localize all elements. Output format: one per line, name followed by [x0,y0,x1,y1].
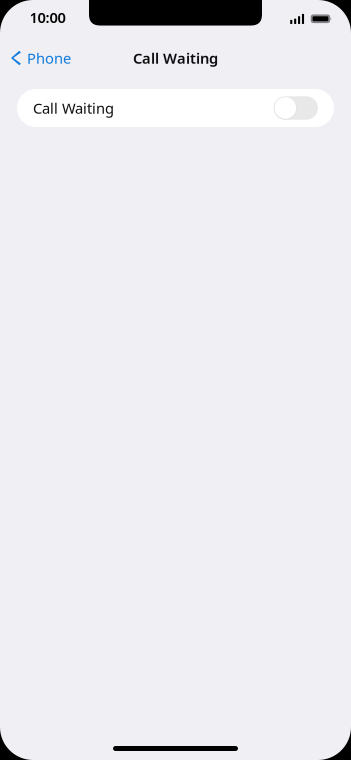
button[interactable]: Call Waiting [17,89,334,127]
staticText: Call Waiting [133,48,218,68]
staticText: Phone [27,48,71,68]
button[interactable]: Phone [0,44,90,72]
staticText: Call Waiting [33,98,114,118]
staticText: 10:00 [29,7,65,27]
